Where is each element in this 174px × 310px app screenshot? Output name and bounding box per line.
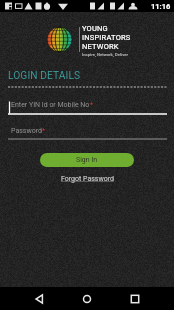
button[interactable]: Recents — [122, 287, 147, 310]
button[interactable]: Home — [74, 287, 99, 310]
staticText: * — [90, 101, 94, 109]
staticText: Inspire, Network, Deliver — [82, 52, 129, 57]
button[interactable]: Back — [27, 287, 52, 310]
staticText: INSPIRATORS — [82, 33, 131, 42]
staticText: Password — [11, 127, 42, 135]
button[interactable]: Enter YIN Id or Mobile No — [8, 99, 167, 115]
staticText: Forgot Password — [61, 175, 114, 183]
staticText: * — [42, 127, 46, 135]
staticText: LOGIN DETAILS — [8, 70, 81, 82]
staticText: 11:16 — [151, 2, 171, 11]
staticText: YOUNG — [82, 24, 108, 33]
button[interactable]: Password — [8, 125, 167, 140]
staticText: Sign In — [76, 156, 98, 164]
staticText: Enter YIN Id or Mobile No — [11, 101, 90, 109]
staticText: NETWORK — [82, 42, 119, 51]
button[interactable]: Sign In — [40, 153, 134, 167]
button[interactable]: Forgot Password — [57, 174, 118, 184]
